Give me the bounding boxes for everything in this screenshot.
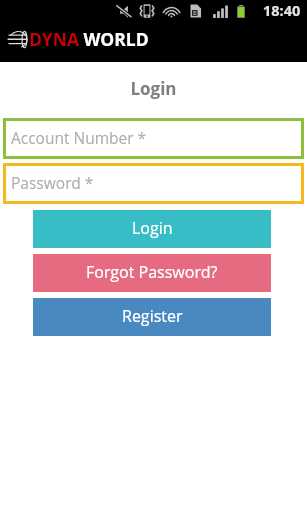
button[interactable]: Forgot Password? [33,254,271,292]
staticText: Password * [11,172,94,193]
button[interactable]: Password * [3,163,304,204]
button[interactable]: Account Number * [3,118,304,159]
staticText: Account Number * [11,127,147,148]
staticText: Login [132,217,173,239]
staticText: Forgot Password? [86,261,218,283]
button[interactable]: Register [33,298,271,336]
staticText: DYNA WORLD [29,27,149,51]
staticText: Register [122,305,183,327]
staticText: Login [0,77,307,100]
button[interactable]: Login [33,210,271,248]
staticText: 18:40 [263,1,301,21]
